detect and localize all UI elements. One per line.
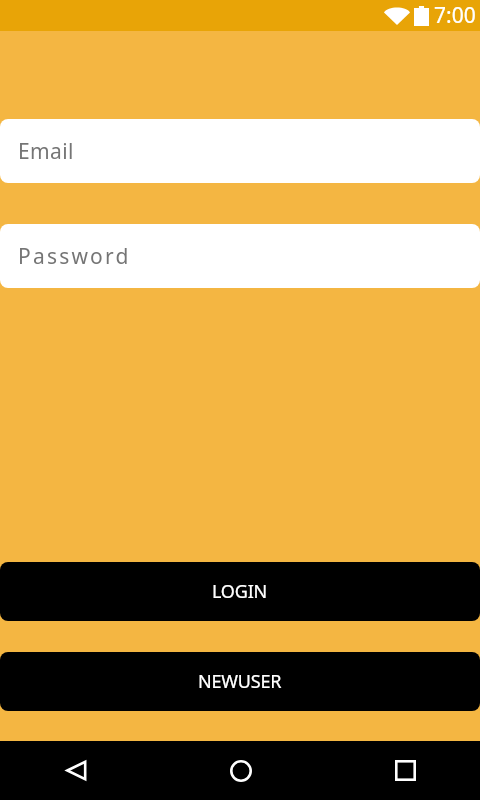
- button[interactable]: Back: [39, 741, 112, 800]
- button[interactable]: Email: [0, 119, 480, 183]
- staticText: Email: [18, 137, 74, 166]
- staticText: LOGIN: [212, 579, 268, 604]
- staticText: NEWUSER: [198, 669, 282, 694]
- button[interactable]: Password: [0, 224, 480, 288]
- button[interactable]: LOGIN: [0, 562, 480, 621]
- button[interactable]: Recent apps: [369, 741, 442, 800]
- button[interactable]: NEWUSER: [0, 652, 480, 711]
- staticText: 7:00: [434, 1, 476, 30]
- staticText: Password: [18, 242, 131, 271]
- button[interactable]: Home: [204, 741, 277, 800]
